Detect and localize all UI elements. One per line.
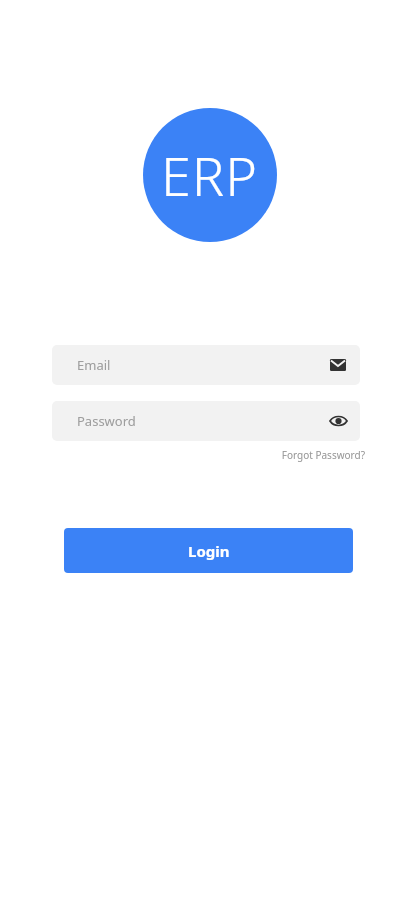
staticText: Password [77,412,136,430]
staticText: Forgot Password? [281,448,365,462]
button[interactable]: Email [329,356,347,374]
button[interactable]: Show password [328,411,348,431]
staticText: Login [188,541,230,561]
button[interactable]: Password [52,401,360,441]
button[interactable]: Forgot Password? [258,446,365,464]
button[interactable]: Email [52,345,360,385]
staticText: Email [77,356,111,374]
button[interactable]: Login [64,528,353,573]
staticText: ERP [161,138,259,212]
